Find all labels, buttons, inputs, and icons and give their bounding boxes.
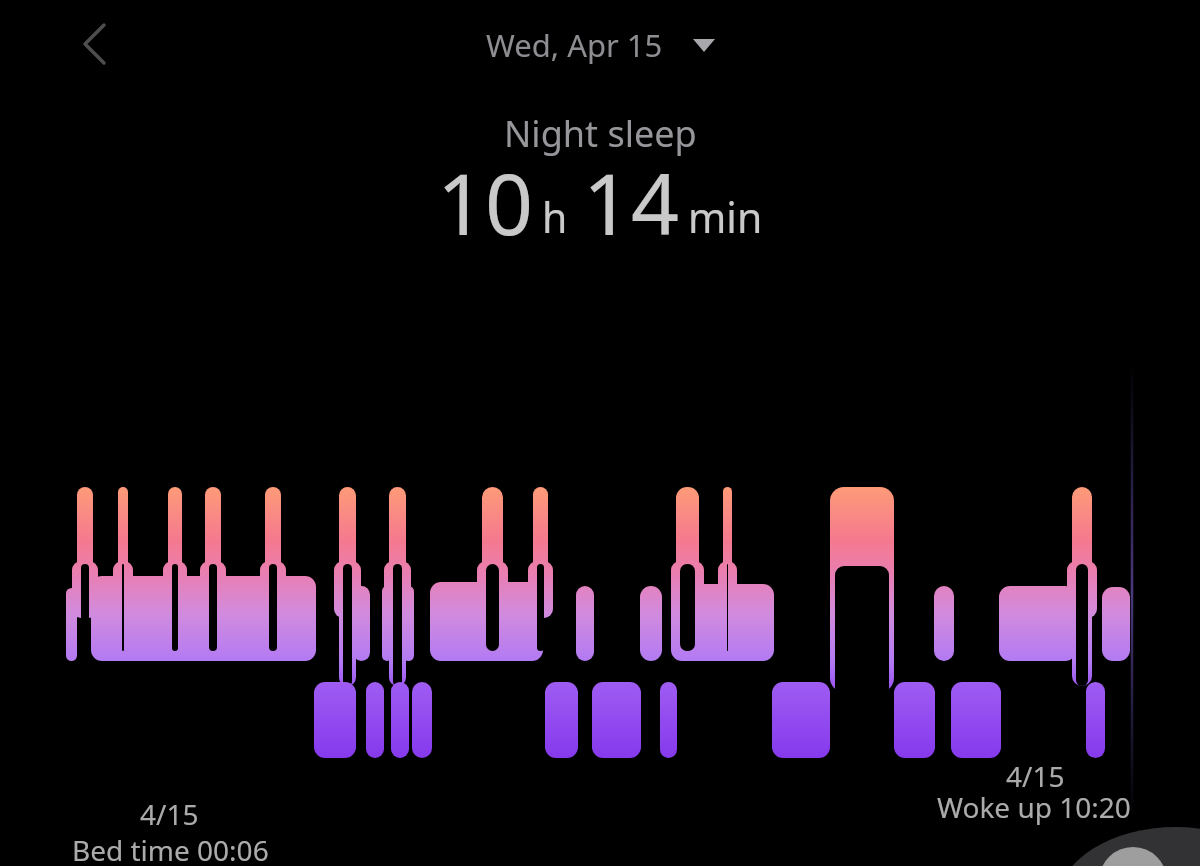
staticText: Woke up 10:20: [937, 788, 1131, 826]
staticText: 4/15: [1006, 757, 1065, 795]
staticText: 4/15: [140, 795, 199, 833]
staticText: Night sleep: [504, 109, 697, 158]
button[interactable]: [68, 14, 116, 74]
staticText: min: [688, 189, 763, 245]
staticText: Wed, Apr 15: [486, 24, 663, 66]
staticText: 14: [583, 145, 680, 259]
staticText: Bed time 00:06: [72, 831, 269, 866]
staticText: 10: [437, 145, 534, 259]
staticText: h: [542, 189, 568, 245]
button[interactable]: Wed, Apr 15: [486, 24, 715, 66]
